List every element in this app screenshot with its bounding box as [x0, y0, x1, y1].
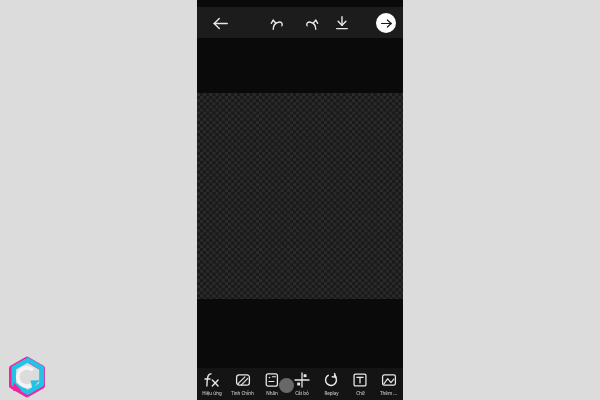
button[interactable]: Chữ: [345, 368, 374, 400]
button[interactable]: Undo: [265, 10, 291, 36]
button[interactable]: Hiệu ứng: [197, 368, 227, 400]
button[interactable]: Cắt bỏ: [287, 368, 316, 400]
staticText: Tinh Chỉnh: [231, 390, 254, 396]
button[interactable]: Back: [207, 10, 233, 36]
other: Logo: [6, 356, 48, 398]
button[interactable]: Nhãn: [257, 368, 287, 400]
button[interactable]: Save: [329, 10, 355, 36]
staticText: Hiệu ứng: [202, 390, 222, 396]
button[interactable]: Next: [376, 13, 396, 33]
button[interactable]: Redo: [298, 10, 324, 36]
button[interactable]: Thêm ...: [374, 368, 403, 400]
staticText: Thêm ...: [380, 390, 397, 396]
staticText: Replay: [324, 390, 339, 396]
staticText: Chữ: [356, 390, 365, 396]
button[interactable]: Tinh Chỉnh: [227, 368, 257, 400]
staticText: Cắt bỏ: [295, 390, 309, 396]
button[interactable]: Replay: [316, 368, 345, 400]
staticText: Nhãn: [266, 390, 278, 396]
